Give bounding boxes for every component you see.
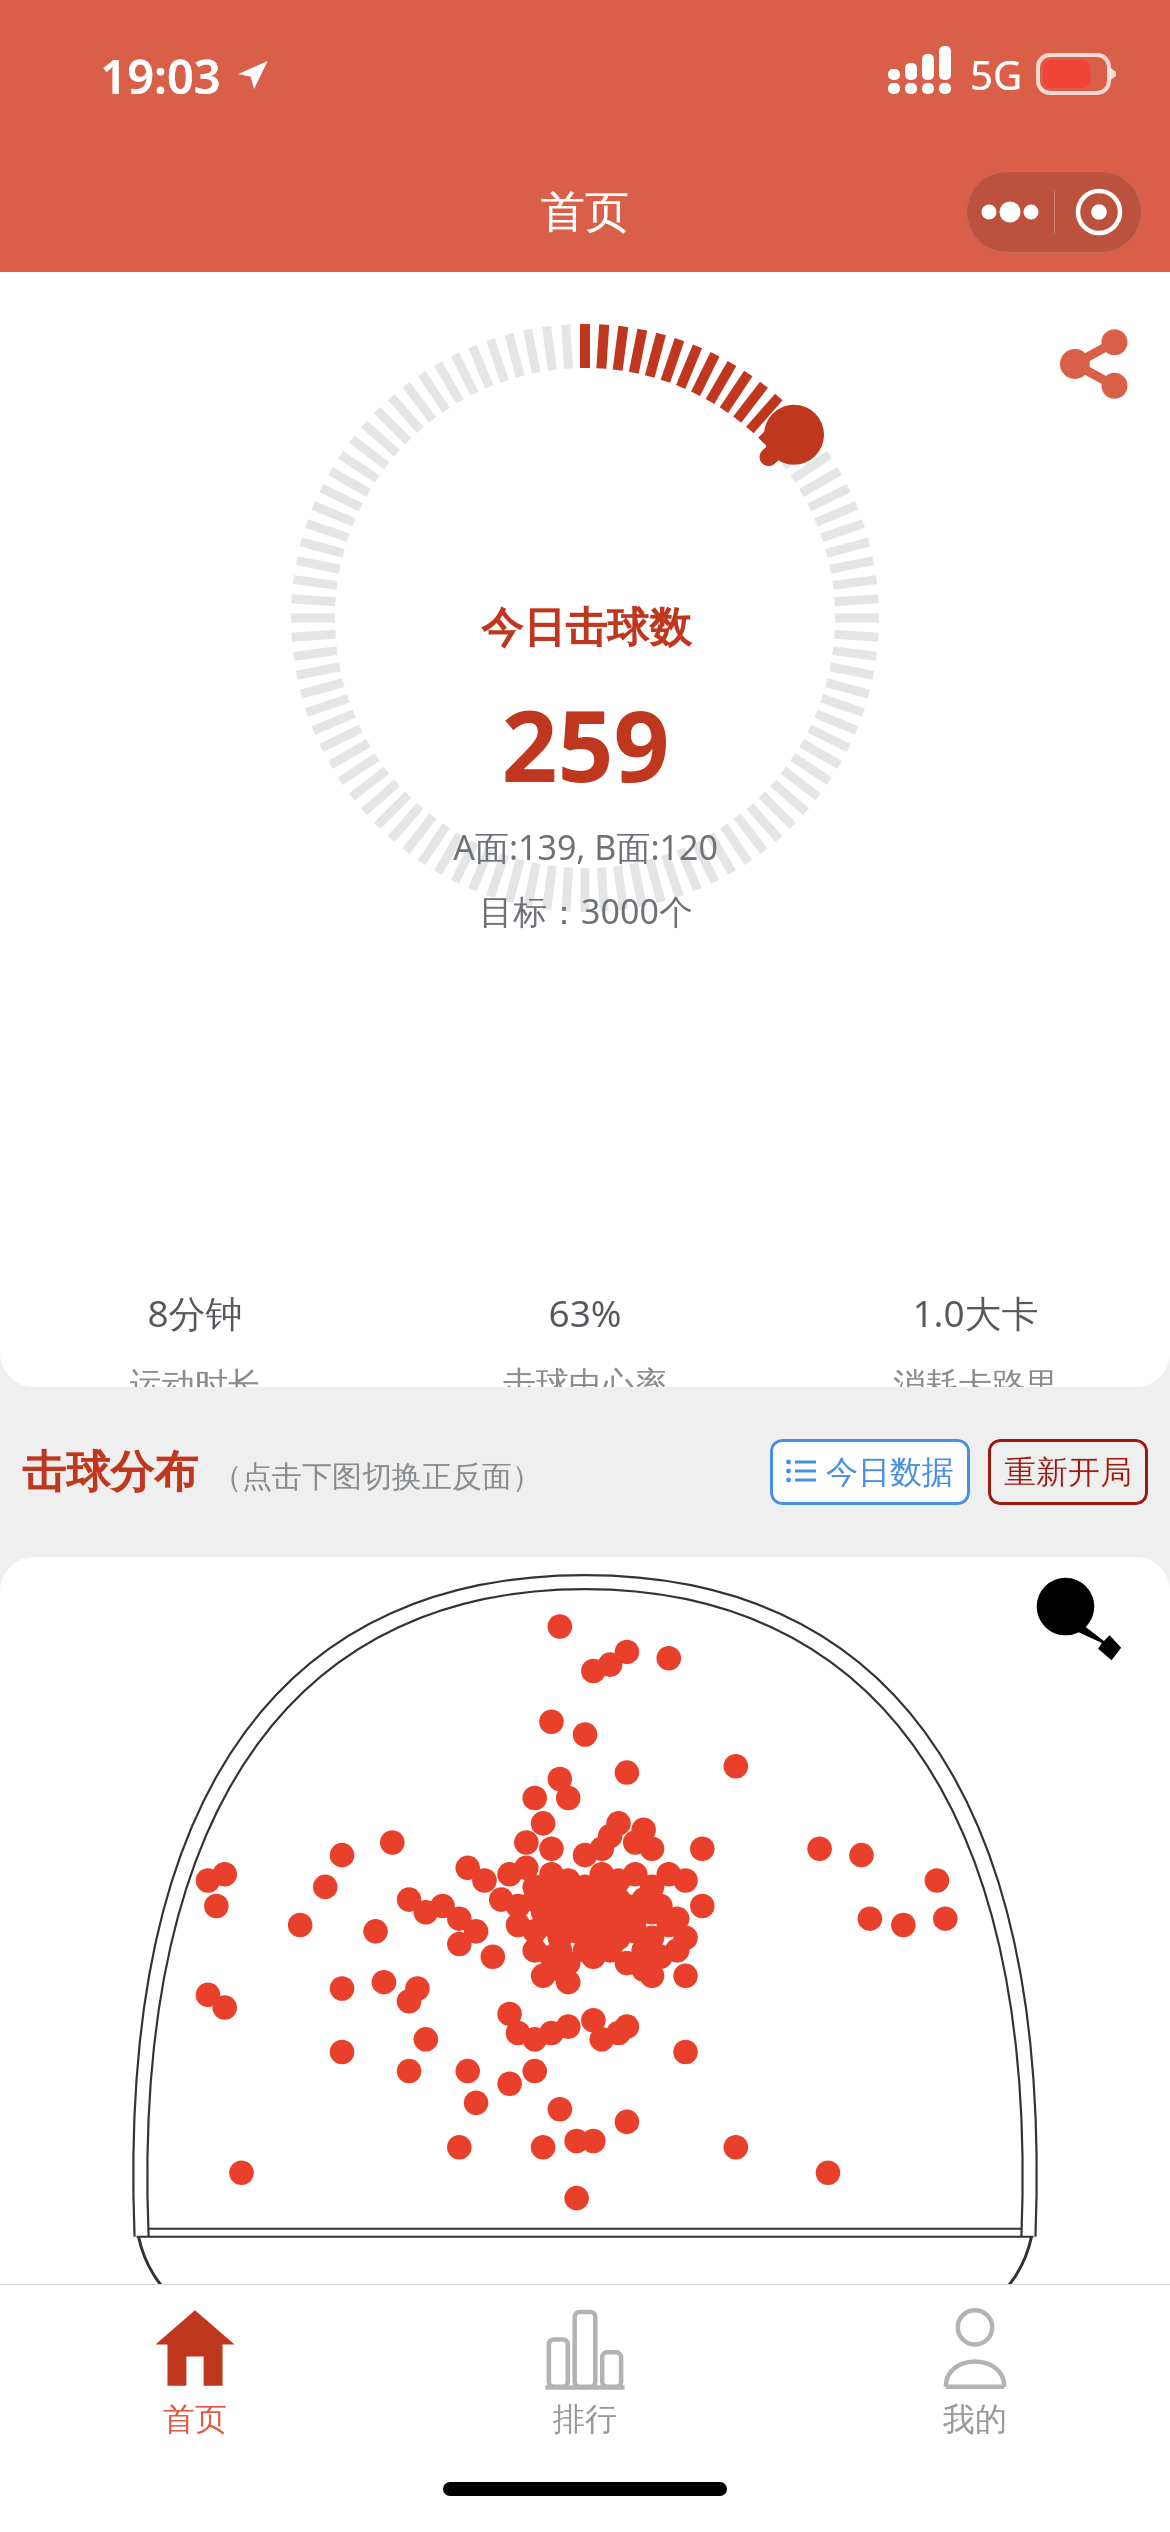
staticText: （点击下图切换正反面）	[212, 1458, 542, 1496]
button[interactable]: 1.0大卡	[780, 1287, 1170, 1387]
staticText: 63%	[548, 1287, 622, 1337]
staticText: 1.0大卡	[912, 1287, 1039, 1338]
button[interactable]: 排行	[390, 2285, 780, 2455]
button[interactable]: Share	[1044, 312, 1148, 416]
staticText: 今日击球数	[481, 602, 691, 655]
staticText: 今日数据	[826, 1452, 954, 1492]
staticText: 首页	[163, 2399, 227, 2439]
staticText: A面:139, B面:120	[453, 824, 718, 870]
staticText: 消耗卡路里	[893, 1364, 1058, 1387]
staticText: 首页	[541, 185, 629, 240]
staticText: 重新开局	[1004, 1452, 1132, 1492]
staticText: 排行	[553, 2399, 617, 2439]
button[interactable]: Menu and close	[966, 171, 1142, 253]
button[interactable]: 8分钟	[0, 1287, 390, 1387]
button[interactable]: 我的	[780, 2285, 1170, 2455]
button[interactable]: Paddle side	[0, 1557, 1170, 2284]
button[interactable]: 63%	[390, 1287, 780, 1387]
staticText: 运动时长	[129, 1364, 261, 1387]
staticText: 19:03	[100, 44, 221, 104]
button[interactable]: Paddle side	[1022, 1565, 1132, 1675]
staticText: 我的	[943, 2399, 1007, 2439]
staticText: 击球分布	[22, 1445, 198, 1500]
staticText: 5G	[970, 47, 1022, 101]
button[interactable]: 首页	[0, 2285, 390, 2455]
button[interactable]: 重新开局	[988, 1439, 1148, 1505]
staticText: 击球中心率	[503, 1363, 668, 1387]
button[interactable]: 今日数据	[770, 1439, 970, 1505]
staticText: 8分钟	[147, 1287, 243, 1338]
staticText: 259	[501, 677, 670, 810]
staticText: 目标：3000个	[479, 888, 693, 934]
